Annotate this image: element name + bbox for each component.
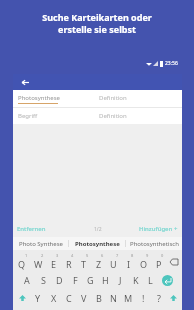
button[interactable]: 8 <box>121 253 136 271</box>
staticText: 23:56 <box>165 60 178 67</box>
staticText: Photo Synthese <box>19 240 63 248</box>
button[interactable]: Zurück <box>19 76 31 88</box>
staticText: 5 <box>86 253 89 258</box>
staticText: 4 <box>71 253 74 258</box>
button[interactable]: Photo Synthese <box>13 237 68 250</box>
staticText: Photosynthese <box>18 94 60 102</box>
button[interactable]: V <box>76 289 91 307</box>
staticText: 7 <box>116 253 119 258</box>
staticText: Hinzufügen + <box>139 225 178 233</box>
button[interactable]: 6 <box>91 253 106 271</box>
button[interactable]: ! <box>136 289 151 307</box>
staticText: 3 <box>56 253 59 258</box>
staticText: D <box>56 274 63 286</box>
button[interactable]: 5 <box>76 253 91 271</box>
button[interactable]: 9 <box>136 253 151 271</box>
staticText: Q <box>18 258 26 270</box>
staticText: 0 <box>161 253 164 258</box>
staticText: Photosynthetisch <box>130 240 179 248</box>
button[interactable]: Umschalt <box>14 289 30 307</box>
staticText: R <box>66 258 72 270</box>
button[interactable]: X <box>46 289 61 307</box>
staticText: ! <box>142 292 145 304</box>
button[interactable]: Entfernen <box>13 223 50 235</box>
staticText: 8 <box>131 253 134 258</box>
button[interactable]: S <box>35 271 51 289</box>
button[interactable]: Photosynthetisch <box>126 237 182 250</box>
button[interactable]: Löschen <box>166 253 181 271</box>
button[interactable]: Y <box>30 289 46 307</box>
staticText: O <box>140 258 148 270</box>
button[interactable]: B <box>91 289 106 307</box>
button[interactable]: Photosynthese <box>69 237 125 250</box>
staticText: S <box>41 274 46 286</box>
staticText: A <box>24 274 30 286</box>
staticText: Y <box>35 292 41 304</box>
staticText: W <box>34 258 43 270</box>
staticText: M <box>124 292 133 304</box>
button[interactable]: Umschalt <box>166 289 181 307</box>
button[interactable]: 3 <box>46 253 61 271</box>
staticText: H <box>102 274 109 286</box>
staticText: I <box>127 258 131 270</box>
button[interactable]: Begriff <box>13 108 182 124</box>
staticText: Suche Karteikarten oder erstelle sie sel… <box>42 11 152 36</box>
staticText: L <box>148 274 153 286</box>
button[interactable]: D <box>51 271 67 289</box>
button[interactable]: 1 <box>14 253 30 271</box>
staticText: 9 <box>146 253 149 258</box>
staticText: T <box>81 258 87 270</box>
staticText: 2 <box>41 253 44 258</box>
button[interactable]: J <box>113 271 128 289</box>
staticText: V <box>81 292 87 304</box>
button[interactable]: C <box>61 289 76 307</box>
staticText: X <box>51 292 57 304</box>
staticText: Definition <box>99 94 127 102</box>
staticText: 1/2 <box>94 226 102 233</box>
button[interactable]: F <box>67 271 83 289</box>
staticText: N <box>110 292 117 304</box>
staticText: ? <box>157 292 161 304</box>
button[interactable]: Hinzufügen + <box>135 223 182 235</box>
staticText: C <box>66 292 72 304</box>
button[interactable]: H <box>98 271 113 289</box>
button[interactable]: 7 <box>106 253 121 271</box>
staticText: G <box>87 274 94 286</box>
button[interactable]: K <box>128 271 143 289</box>
staticText: P <box>156 258 162 270</box>
staticText: E <box>51 258 57 270</box>
button[interactable]: 4 <box>61 253 76 271</box>
button[interactable]: 0 <box>151 253 166 271</box>
button[interactable]: M <box>121 289 136 307</box>
button[interactable]: A <box>19 271 35 289</box>
staticText: J <box>119 274 122 286</box>
staticText: U <box>110 258 117 270</box>
staticText: K <box>133 274 139 286</box>
staticText: Definition <box>99 112 127 120</box>
staticText: 6 <box>101 253 104 258</box>
staticText: Begriff <box>18 112 38 120</box>
staticText: F <box>73 274 78 286</box>
button[interactable]: Photosynthese <box>13 90 182 107</box>
staticText: Entfernen <box>17 225 46 233</box>
button[interactable]: N <box>106 289 121 307</box>
staticText: 1 <box>25 253 28 258</box>
staticText: Z <box>96 258 102 270</box>
button[interactable]: Eingabe <box>158 271 176 289</box>
staticText: Photosynthese <box>75 240 120 248</box>
button[interactable]: L <box>143 271 158 289</box>
staticText: B <box>96 292 102 304</box>
button[interactable]: G <box>83 271 98 289</box>
button[interactable]: 2 <box>30 253 46 271</box>
button[interactable]: ? <box>151 289 166 307</box>
